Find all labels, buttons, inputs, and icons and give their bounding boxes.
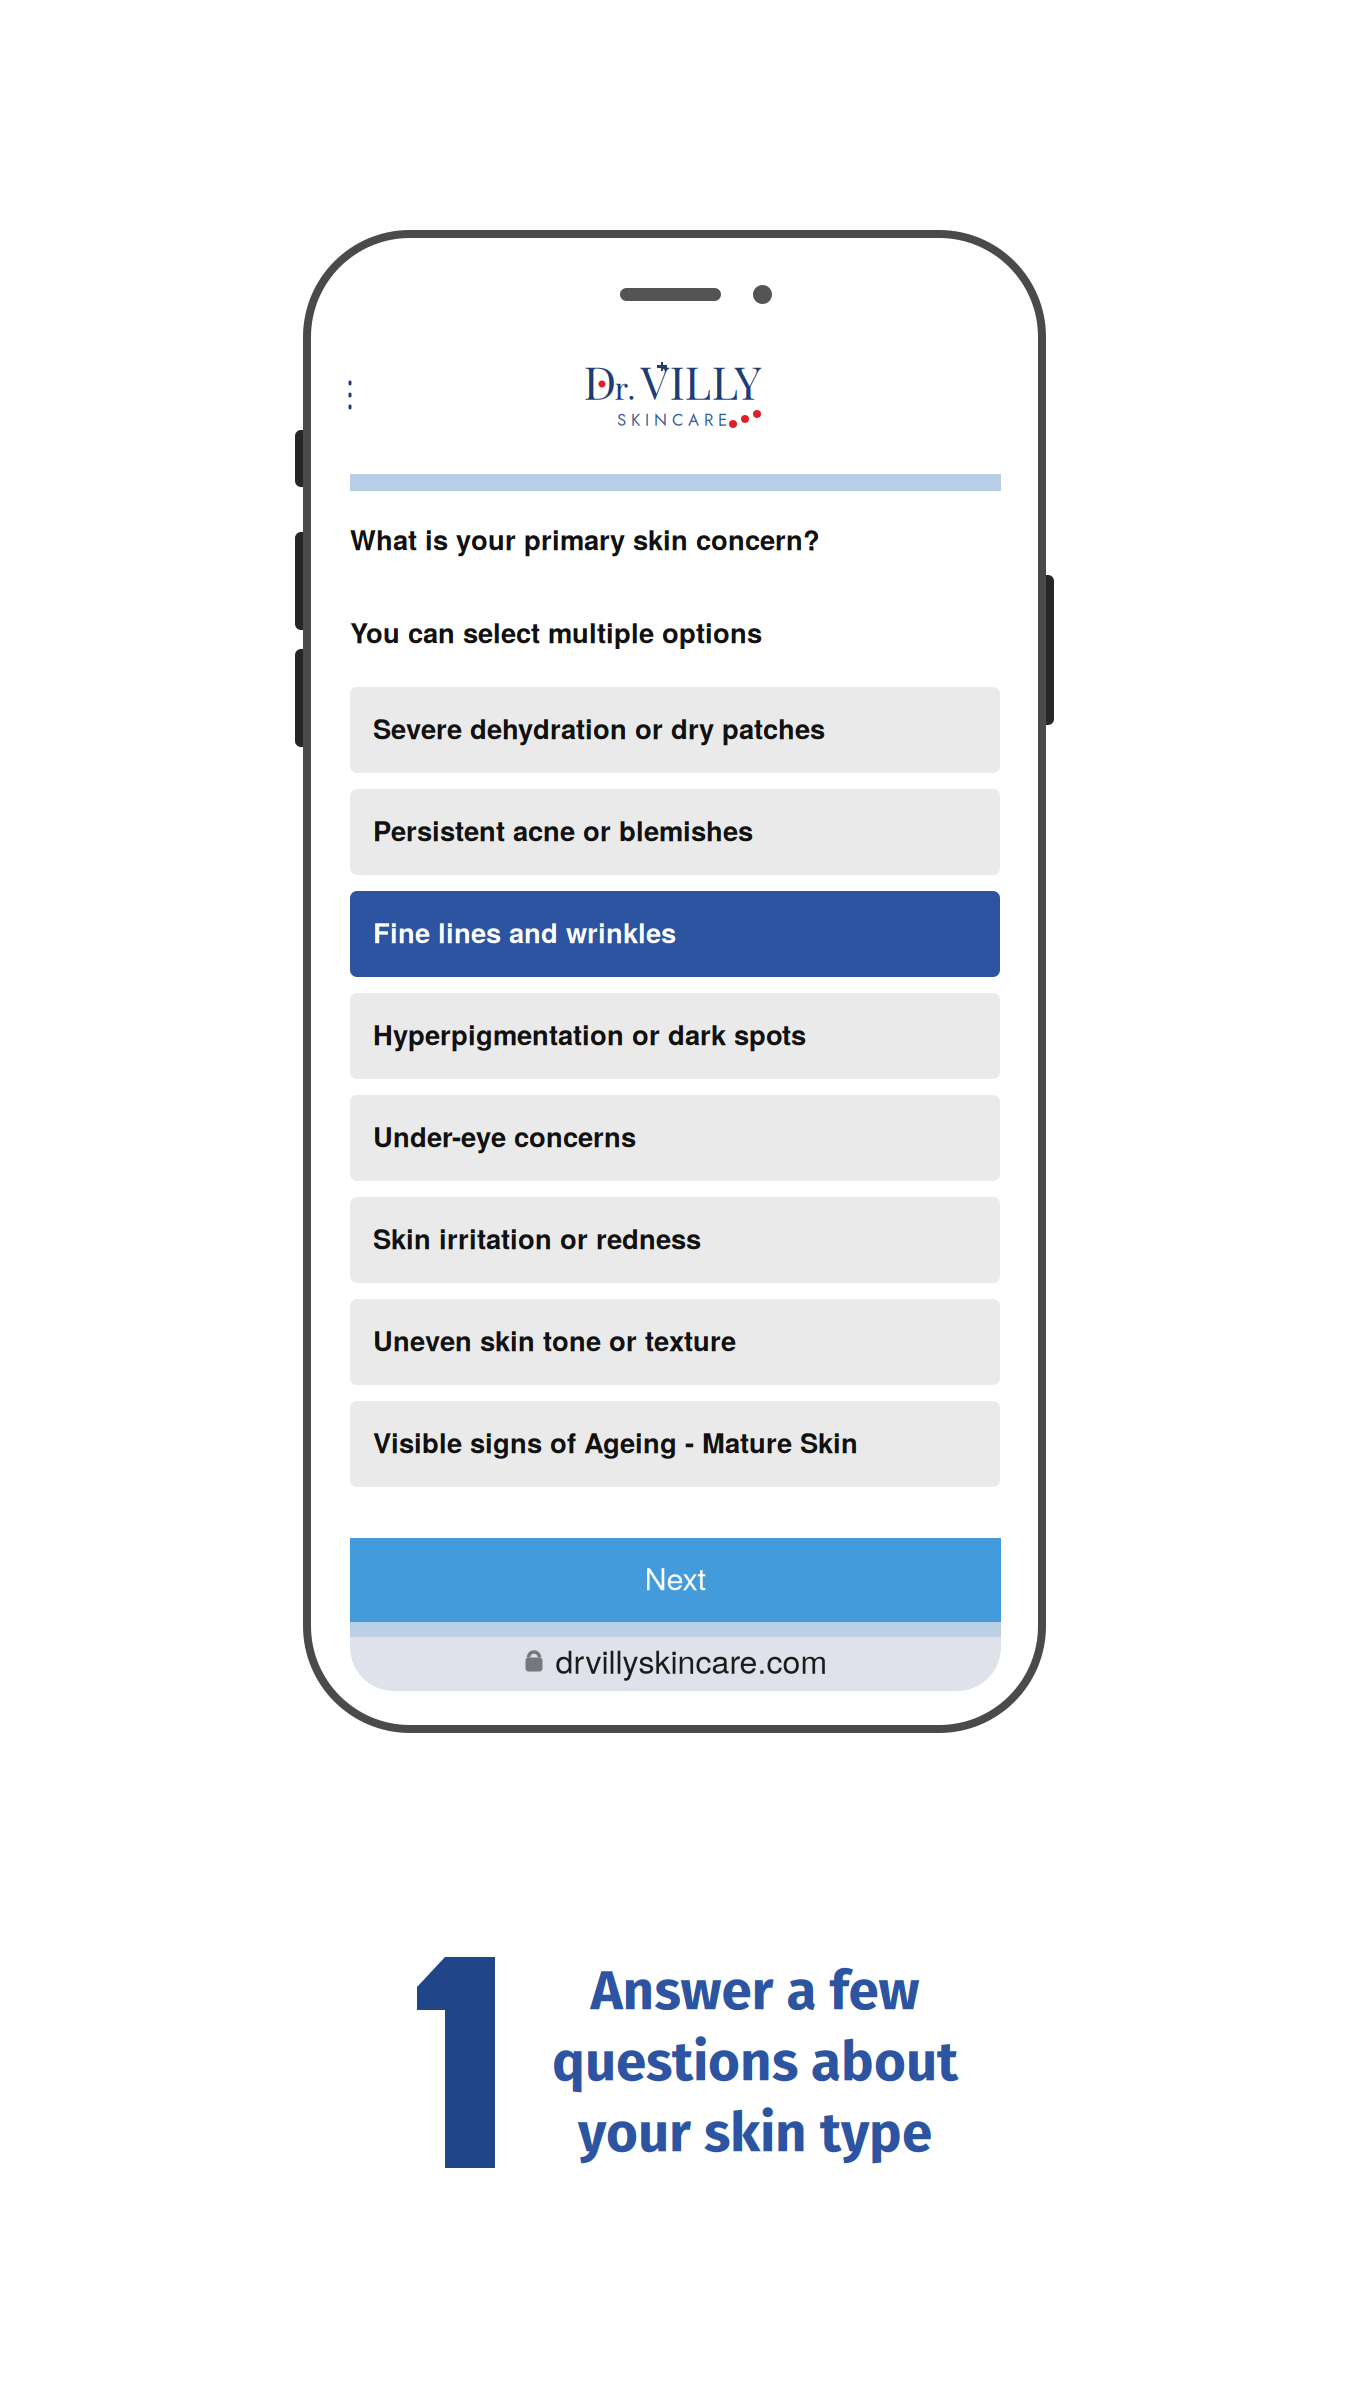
staticText: Fine lines and wrinkles	[373, 912, 676, 951]
staticText: Under-eye concerns	[373, 1116, 636, 1155]
button[interactable]: Visible signs of Ageing - Mature Skin	[350, 1401, 1000, 1487]
staticText: You can select multiple options	[350, 612, 762, 651]
button[interactable]: Under-eye concerns	[350, 1095, 1000, 1181]
button[interactable]: Severe dehydration or dry patches	[350, 687, 1000, 773]
button[interactable]: Fine lines and wrinkles	[350, 891, 1000, 977]
staticText: What is your primary skin concern?	[350, 519, 820, 558]
staticText: Next	[644, 1555, 706, 1599]
staticText: Skin irritation or redness	[373, 1218, 701, 1257]
staticText: S K I N C A R E	[617, 408, 727, 432]
staticText: Uneven skin tone or texture	[373, 1320, 736, 1359]
staticText: Severe dehydration or dry patches	[373, 708, 825, 747]
staticText: Persistent acne or blemishes	[373, 810, 753, 849]
button[interactable]: Uneven skin tone or texture	[350, 1299, 1000, 1385]
staticText: Visible signs of Ageing - Mature Skin	[373, 1422, 858, 1461]
staticText: drvillyskincare.com	[555, 1637, 827, 1683]
staticText: Hyperpigmentation or dark spots	[373, 1014, 806, 1053]
staticText: your skin type	[578, 2100, 932, 2166]
staticText: questions about	[552, 2029, 958, 2095]
staticText: D	[583, 351, 616, 411]
button[interactable]: Next	[350, 1538, 1001, 1622]
button[interactable]: Skin irritation or redness	[350, 1197, 1000, 1283]
button[interactable]: Persistent acne or blemishes	[350, 789, 1000, 875]
staticText: Answer a few	[590, 1958, 919, 2024]
button[interactable]: Hyperpigmentation or dark spots	[350, 993, 1000, 1079]
staticText: VILLY	[640, 351, 761, 411]
staticText: r.	[614, 367, 635, 407]
button[interactable]: Menu	[0, 0, 1350, 2400]
